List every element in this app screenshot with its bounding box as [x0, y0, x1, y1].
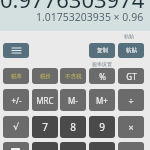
button[interactable]: +/-: [3, 89, 29, 111]
staticText: %: [99, 71, 106, 82]
staticText: 9: [99, 120, 105, 134]
button[interactable]: Menu: [3, 43, 29, 58]
button[interactable]: 5: [60, 142, 86, 150]
staticText: 7: [42, 120, 48, 134]
staticText: 复制: [97, 47, 108, 54]
button[interactable]: ÷: [118, 89, 144, 111]
button[interactable]: M-: [60, 89, 86, 111]
button[interactable]: ×: [118, 116, 144, 138]
button[interactable]: [3, 142, 29, 150]
button[interactable]: 粘贴: [118, 43, 144, 58]
button[interactable]: M+: [89, 89, 115, 111]
button[interactable]: MRC: [32, 89, 58, 111]
button[interactable]: √: [3, 116, 29, 138]
button[interactable]: 不含税: [60, 68, 86, 84]
button[interactable]: 9: [89, 116, 115, 138]
staticText: 粘贴: [126, 47, 137, 54]
staticText: 税率设置: [92, 61, 112, 67]
button[interactable]: GT: [118, 68, 144, 84]
button[interactable]: 4: [32, 142, 58, 150]
staticText: 0.977630397478: [0, 0, 150, 15]
button[interactable]: 6: [89, 142, 115, 150]
button[interactable]: 7: [32, 116, 58, 138]
button[interactable]: %: [89, 68, 115, 84]
staticText: M+: [96, 95, 108, 106]
button[interactable]: 8: [60, 116, 86, 138]
staticText: GT: [126, 71, 137, 82]
staticText: 8: [70, 120, 76, 134]
staticText: ÷: [128, 94, 134, 106]
staticText: M-: [68, 95, 78, 106]
staticText: ×: [128, 121, 134, 133]
staticText: 1.01753203935 × 0.96: [36, 10, 144, 24]
staticText: 粘贴: [124, 33, 134, 39]
staticText: 不含税: [65, 73, 82, 80]
button[interactable]: 复制: [89, 43, 115, 58]
button[interactable]: 税价: [32, 68, 58, 84]
button[interactable]: 税率: [3, 68, 29, 84]
staticText: √: [13, 122, 19, 132]
staticText: 税价: [40, 73, 51, 80]
button[interactable]: -: [118, 142, 144, 150]
staticText: MRC: [36, 95, 54, 106]
staticText: 税率: [11, 73, 22, 80]
staticText: +/-: [11, 95, 22, 106]
